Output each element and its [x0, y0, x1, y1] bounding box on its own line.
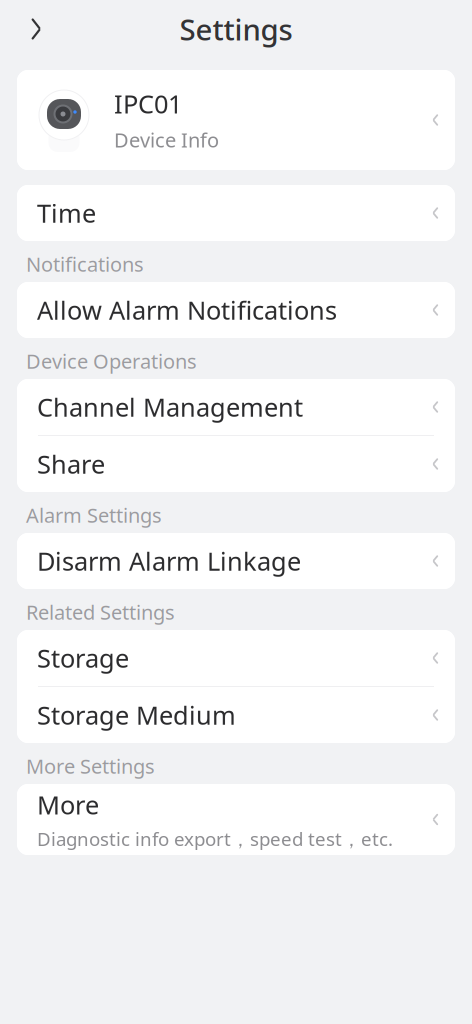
staticText: Device Operations: [26, 348, 197, 374]
button[interactable]: Disarm Alarm Linkage: [17, 533, 455, 589]
button[interactable]: Storage Medium: [17, 687, 455, 743]
staticText: Storage: [37, 641, 129, 675]
staticText: Disarm Alarm Linkage: [37, 544, 301, 578]
staticText: Allow Alarm Notifications: [37, 293, 337, 327]
staticText: IPC01: [114, 87, 182, 120]
staticText: Settings: [179, 9, 292, 48]
staticText: Time: [37, 196, 96, 230]
button[interactable]: Storage: [17, 630, 455, 686]
button[interactable]: Back: [14, 7, 58, 51]
button[interactable]: More: [17, 784, 455, 855]
staticText: More: [37, 788, 99, 821]
staticText: Notifications: [26, 251, 144, 277]
staticText: Alarm Settings: [26, 502, 162, 528]
staticText: More Settings: [26, 753, 155, 779]
staticText: Storage Medium: [37, 698, 236, 732]
staticText: Diagnostic info export，speed test，etc.: [37, 826, 393, 851]
button[interactable]: Channel Management: [17, 379, 455, 435]
button[interactable]: Share: [17, 436, 455, 492]
staticText: Device Info: [114, 126, 219, 153]
button[interactable]: Time: [17, 185, 455, 241]
staticText: Channel Management: [37, 390, 303, 424]
button[interactable]: Allow Alarm Notifications: [17, 282, 455, 338]
button[interactable]: IPC01: [17, 70, 455, 170]
staticText: Share: [37, 447, 105, 481]
staticText: Related Settings: [26, 599, 175, 625]
